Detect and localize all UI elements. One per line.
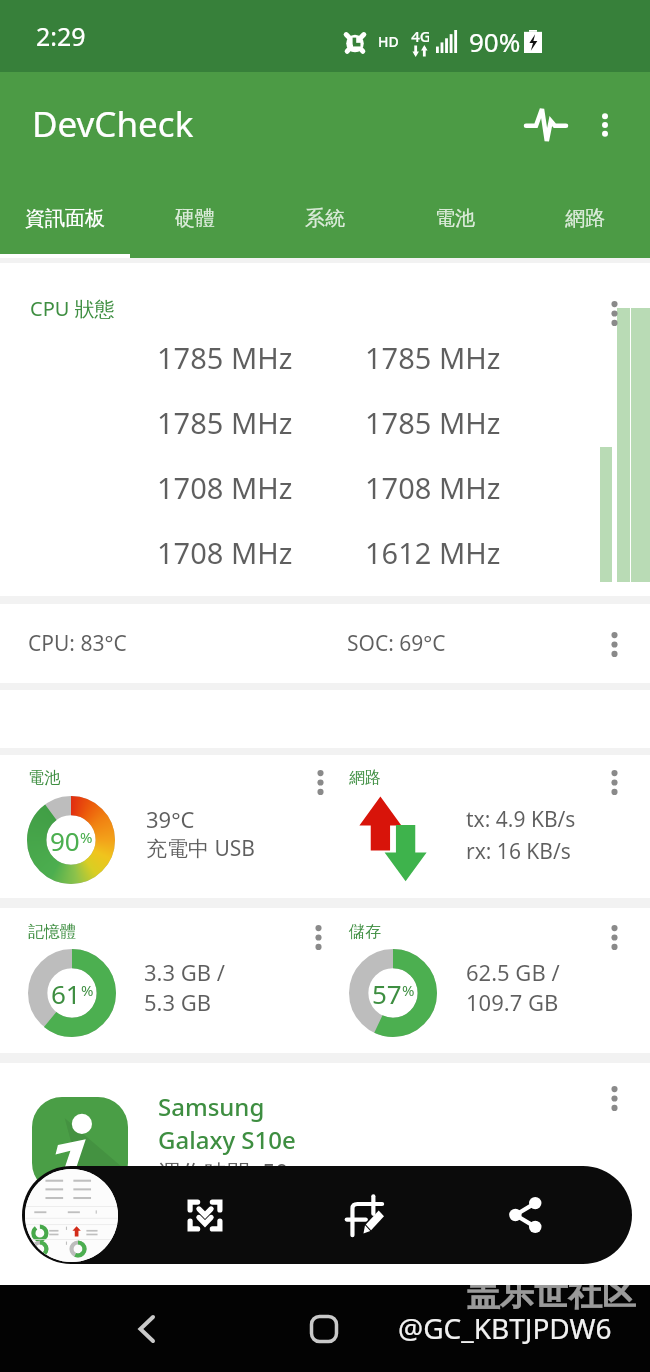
button[interactable]: 硬體 bbox=[130, 178, 260, 258]
button[interactable]: 資訊面板 bbox=[0, 178, 130, 258]
button[interactable]: More options bbox=[300, 916, 336, 958]
staticText: CPU: 83°C bbox=[28, 629, 127, 658]
staticText: 1612 MHz bbox=[365, 533, 501, 572]
staticText: Samsung bbox=[158, 1090, 265, 1123]
button[interactable]: Crop and draw bbox=[336, 1186, 394, 1244]
button[interactable]: More options bbox=[596, 1077, 632, 1119]
staticText: 3.3 GB / bbox=[144, 957, 226, 987]
button[interactable]: Back bbox=[118, 1300, 176, 1358]
staticText: 62.5 GB / bbox=[466, 957, 560, 987]
staticText: 運作時間: 50s bbox=[158, 1156, 300, 1187]
staticText: 1785 MHz bbox=[157, 403, 293, 442]
staticText: 90 bbox=[50, 823, 80, 858]
staticText: 網路 bbox=[565, 206, 605, 231]
staticText: 1785 MHz bbox=[365, 338, 501, 377]
staticText: 充電中 USB bbox=[146, 834, 255, 863]
staticText: @GC_KBTJPDW6 bbox=[398, 1309, 612, 1347]
staticText: 1785 MHz bbox=[157, 338, 293, 377]
staticText: CPU 狀態 bbox=[30, 295, 115, 322]
staticText: 61 bbox=[51, 976, 81, 1011]
staticText: 57 bbox=[372, 976, 402, 1011]
staticText: SOC: 69°C bbox=[347, 629, 446, 658]
button[interactable]: Screenshot preview bbox=[25, 1169, 118, 1262]
staticText: % bbox=[80, 827, 93, 847]
staticText: tx: 4.9 KB/s bbox=[466, 805, 576, 834]
staticText: 1708 MHz bbox=[157, 533, 293, 572]
staticText: rx: 16 KB/s bbox=[466, 837, 571, 866]
staticText: 2:29 bbox=[36, 19, 86, 53]
staticText: HD bbox=[378, 32, 399, 51]
staticText: % bbox=[402, 980, 415, 1000]
button[interactable]: Home bbox=[295, 1300, 353, 1358]
staticText: 1785 MHz bbox=[365, 403, 501, 442]
staticText: 1708 MHz bbox=[365, 468, 501, 507]
button[interactable]: More options bbox=[302, 761, 338, 803]
staticText: 網路 bbox=[349, 768, 381, 788]
button[interactable]: More options bbox=[596, 623, 632, 665]
staticText: % bbox=[81, 980, 94, 1000]
staticText: 39°C bbox=[146, 804, 195, 834]
staticText: DevCheck bbox=[32, 100, 194, 148]
button[interactable]: More options bbox=[596, 761, 632, 803]
staticText: 109.7 GB bbox=[466, 987, 559, 1017]
staticText: 5.3 GB bbox=[144, 987, 212, 1017]
staticText: 4G bbox=[411, 26, 429, 46]
staticText: 電池 bbox=[435, 206, 475, 231]
button[interactable]: 網路 bbox=[520, 178, 650, 258]
staticText: 儲存 bbox=[349, 922, 381, 942]
staticText: 盖乐世社区 bbox=[466, 1272, 636, 1315]
staticText: 硬體 bbox=[175, 206, 215, 231]
button[interactable]: Monitor bbox=[518, 97, 574, 153]
button[interactable]: Recents bbox=[542, 1300, 600, 1358]
button[interactable]: 電池 bbox=[390, 178, 520, 258]
button[interactable]: More options bbox=[596, 916, 632, 958]
button[interactable]: 系統 bbox=[260, 178, 390, 258]
staticText: 系統 bbox=[305, 206, 345, 231]
staticText: 資訊面板 bbox=[25, 206, 105, 231]
staticText: 記憶體 bbox=[28, 922, 76, 942]
button[interactable]: More options bbox=[596, 292, 632, 334]
button[interactable]: More options bbox=[574, 94, 636, 156]
button[interactable]: Share bbox=[496, 1186, 554, 1244]
staticText: 電池 bbox=[28, 768, 60, 788]
staticText: 1708 MHz bbox=[157, 468, 293, 507]
staticText: Galaxy S10e bbox=[158, 1123, 296, 1156]
staticText: 90% bbox=[469, 24, 521, 59]
button[interactable]: Scroll capture bbox=[176, 1186, 234, 1244]
